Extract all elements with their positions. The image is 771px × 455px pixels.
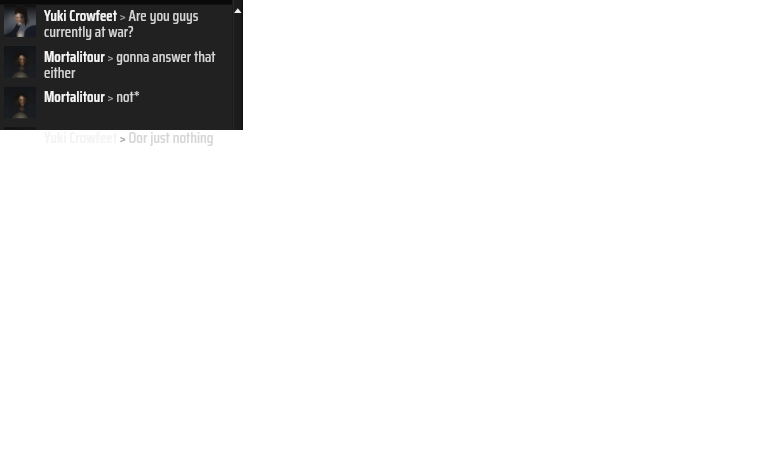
- staticText: currently at war?: [44, 20, 134, 44]
- staticText: Yuki Crowfeet > Oor just nothing: [44, 126, 214, 150]
- staticText: Mortalitour > not*: [44, 85, 140, 109]
- staticText: Mortalitour > gonna answer that: [44, 45, 216, 69]
- button[interactable]: Mortalitour > gonna answer that: [0, 43, 243, 84]
- button[interactable]: Yuki Crowfeet > Are you guys: [0, 2, 243, 43]
- button[interactable]: Yuki Crowfeet > Oor just nothing: [0, 124, 243, 165]
- button[interactable]: Mortalitour > not*: [0, 83, 243, 124]
- staticText: Yuki Crowfeet > Are you guys: [44, 4, 199, 28]
- button[interactable]: Scroll up: [232, 0, 243, 130]
- staticText: either: [44, 61, 76, 85]
